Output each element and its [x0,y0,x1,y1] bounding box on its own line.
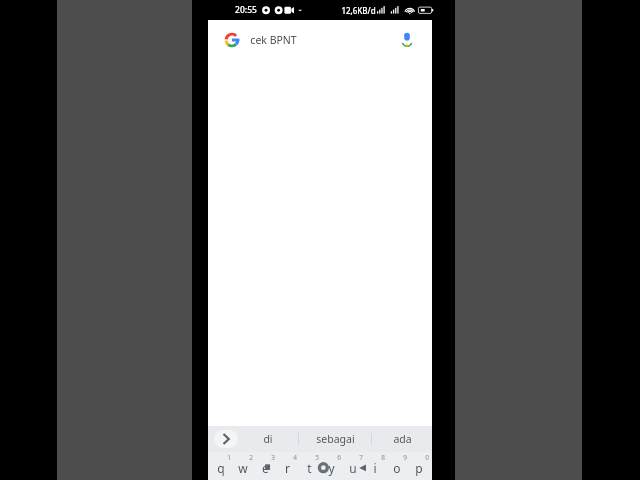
button[interactable]: cek BPNT [216,25,424,55]
staticText: 9 [403,453,407,462]
staticText: r [285,460,290,476]
button[interactable]: u [342,452,364,480]
button[interactable]: di [238,426,298,452]
button[interactable]: i [364,452,386,480]
button[interactable]: o [386,452,408,480]
staticText: 8 [381,453,385,462]
staticText: t [307,460,312,476]
staticText: q [217,460,225,476]
button[interactable]: More suggestions [214,430,238,448]
staticText: 20:55 [235,4,257,16]
button[interactable]: y [320,452,342,480]
button[interactable]: r [276,452,298,480]
staticText: p [415,460,423,476]
button[interactable]: p [408,452,430,480]
staticText: cek BPNT [250,33,297,47]
staticText: 12,6KB/d [341,5,376,16]
staticText: 0 [425,453,429,462]
button[interactable]: w [232,452,254,480]
staticText: 6 [337,453,341,462]
button[interactable]: t [298,452,320,480]
button[interactable]: q [210,452,232,480]
staticText: 5 [315,453,319,462]
staticText: 2 [249,453,253,462]
staticText: u [349,460,357,476]
staticText: i [373,460,377,476]
staticText: ada [393,432,412,446]
staticText: 1 [227,453,231,462]
staticText: di [263,432,273,446]
staticText: o [393,460,401,476]
staticText: 3 [271,453,275,462]
staticText: 7 [359,453,363,462]
staticText: w [238,460,248,476]
button[interactable]: sebagai [299,426,371,452]
staticText: e [262,460,269,476]
button[interactable]: e [254,452,276,480]
staticText: 4 [293,453,297,462]
button[interactable]: ada [372,426,432,452]
button[interactable]: Voice search [398,31,416,49]
staticText: y [328,460,335,476]
staticText: sebagai [316,432,355,446]
